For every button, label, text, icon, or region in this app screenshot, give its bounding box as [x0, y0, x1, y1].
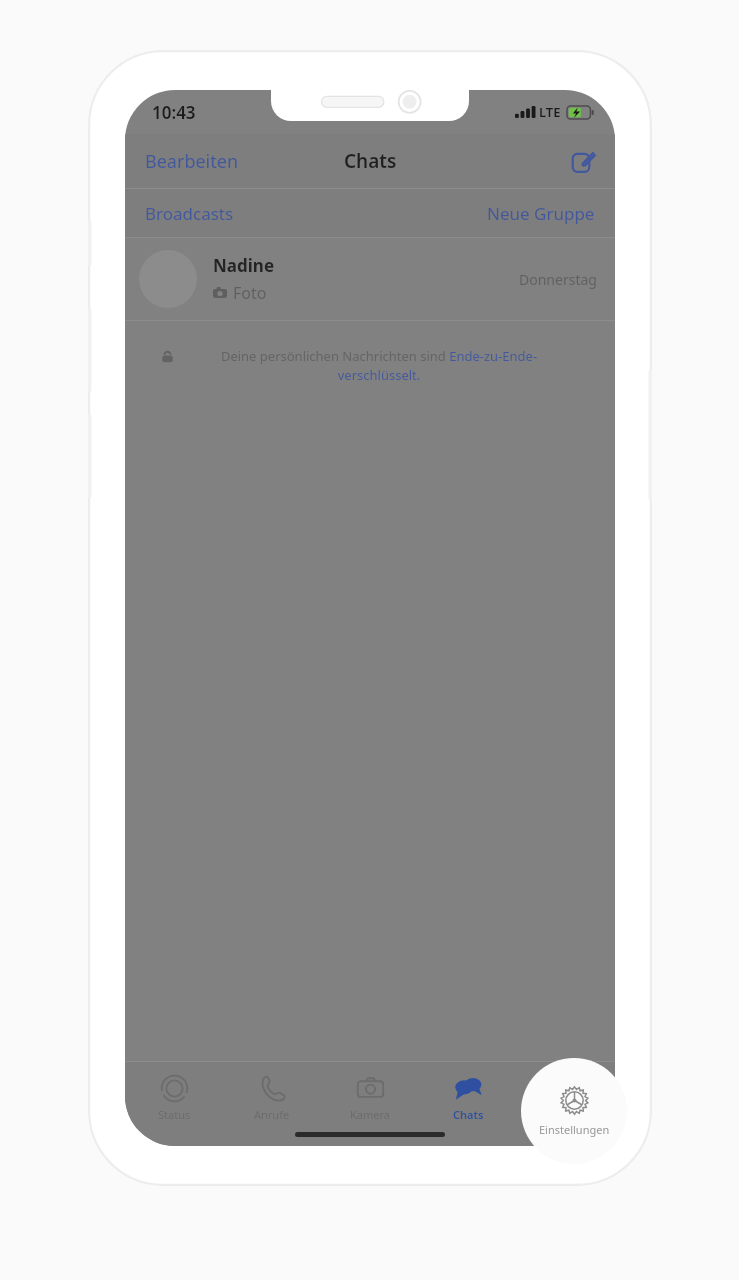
- button[interactable]: Status: [125, 1071, 223, 1126]
- button[interactable]: Broadcasts: [125, 192, 254, 235]
- button[interactable]: Nadine: [125, 238, 615, 320]
- staticText: Einstellungen: [539, 1122, 610, 1137]
- button[interactable]: Bearbeiten: [125, 139, 259, 184]
- staticText: Chats: [453, 1107, 484, 1122]
- staticText: Chats: [344, 148, 397, 174]
- button[interactable]: Chats: [419, 1071, 517, 1126]
- staticText: Bearbeiten: [145, 149, 239, 174]
- button[interactable]: Neuer Chat: [552, 140, 615, 183]
- staticText: 10:43: [152, 101, 196, 124]
- staticText: LTE: [539, 103, 561, 121]
- button[interactable]: Einstellungen: [521, 1058, 627, 1164]
- staticText: Foto: [233, 282, 267, 304]
- staticText: Donnerstag: [519, 270, 597, 289]
- button[interactable]: Anrufe: [223, 1071, 321, 1126]
- staticText: Status: [158, 1107, 191, 1122]
- button[interactable]: Neue Gruppe: [467, 192, 615, 235]
- staticText: Nadine: [213, 254, 275, 277]
- staticText: Broadcasts: [145, 202, 234, 225]
- staticText: Anrufe: [254, 1107, 290, 1122]
- button[interactable]: Kamera: [321, 1071, 419, 1126]
- button[interactable]: Einstellungen: [517, 1071, 615, 1126]
- staticText: Neue Gruppe: [487, 202, 595, 225]
- staticText: Deine persönlichen Nachrichten sind Ende…: [181, 347, 577, 384]
- staticText: Einstellungen: [531, 1107, 602, 1122]
- staticText: Kamera: [350, 1107, 390, 1122]
